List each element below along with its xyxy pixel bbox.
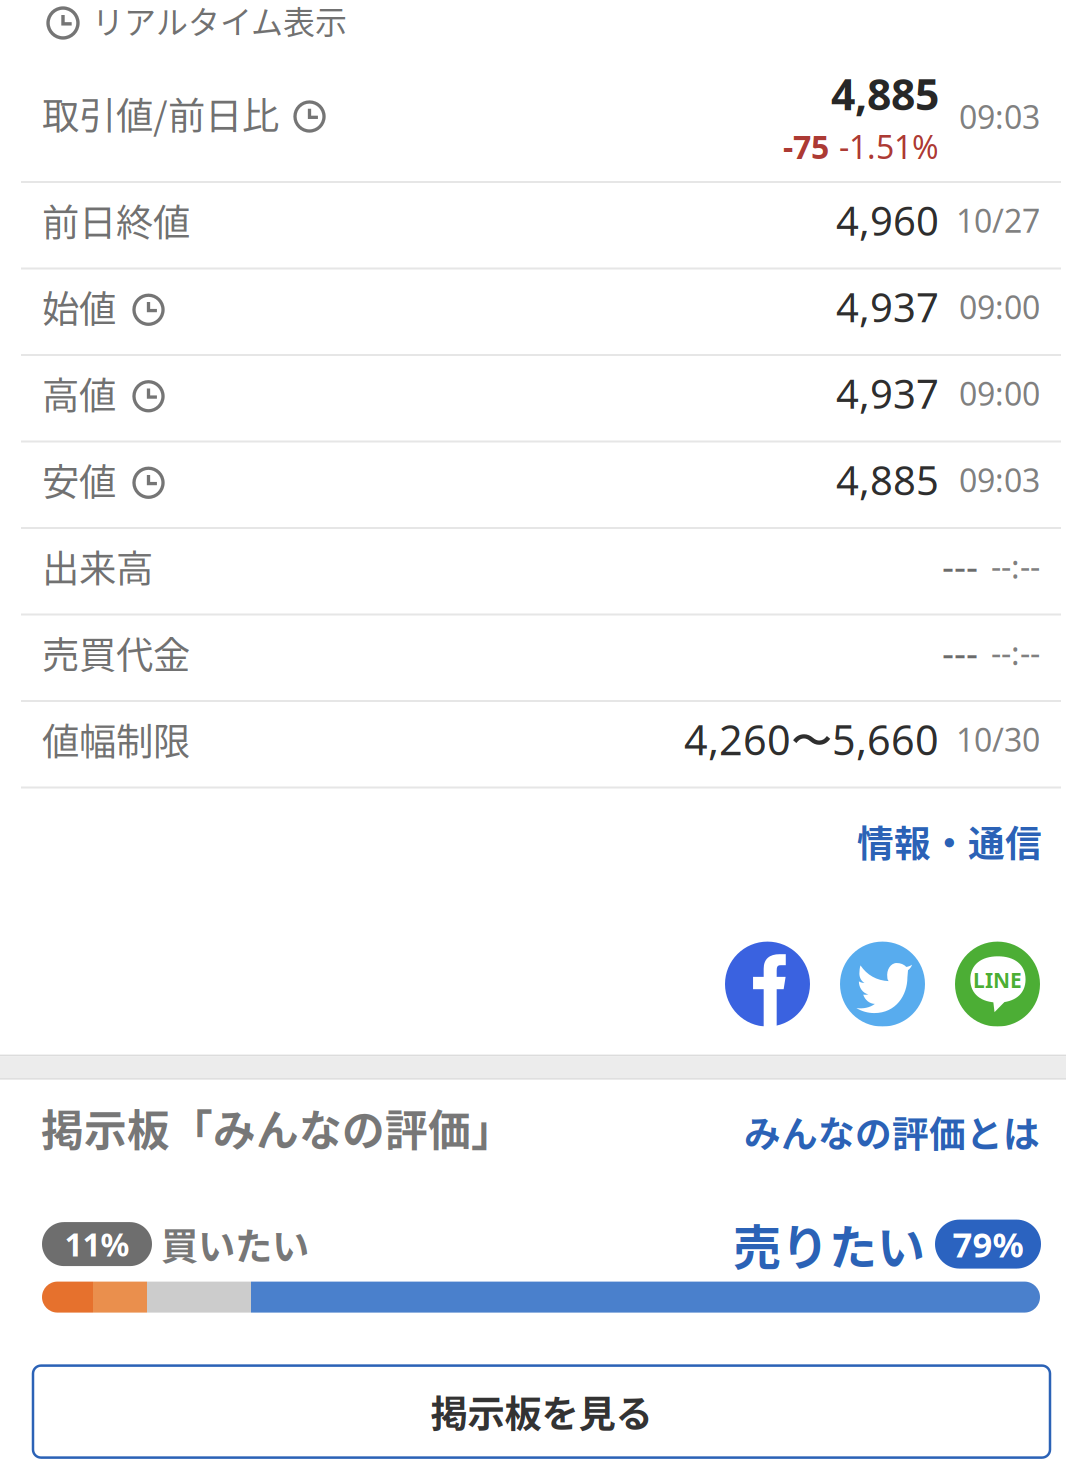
staticText: 10/30 [956,717,1040,761]
staticText: --:-- [991,544,1040,588]
staticText: 4,885 [836,452,939,507]
staticText: -1.51% [839,125,939,168]
staticText: --- [942,627,978,678]
staticText: 4,960 [836,193,939,247]
staticText: 取引値/前日比 [42,86,279,141]
staticText: 安値 [42,453,116,507]
staticText: -75 [783,125,829,168]
staticText: 売買代金 [42,626,190,680]
staticText: 売りたい [733,1209,925,1279]
staticText: 情報・通信 [857,814,1042,868]
staticText: 4,885 [831,65,939,123]
staticText: 09:00 [959,371,1040,415]
staticText: 11% [64,1222,129,1266]
staticText: 09:03 [959,95,1040,138]
staticText: 4,937 [836,366,939,420]
staticText: --:-- [991,631,1040,675]
staticText: みんなの評価とは [744,1105,1040,1158]
button[interactable]: Share on Twitter [840,942,925,1027]
staticText: 値幅制限 [42,712,190,766]
button[interactable]: 掲示板を見る [33,1366,1050,1458]
staticText: 買いたい [161,1217,309,1271]
staticText: 09:00 [959,285,1040,329]
button[interactable]: Share on LINE [955,942,1040,1027]
button[interactable]: Share on Facebook [725,942,810,1027]
staticText: --- [942,541,978,592]
staticText: 掲示板を見る [430,1385,652,1439]
staticText: 79% [952,1220,1023,1268]
staticText: LINE [973,966,1022,994]
staticText: リアルタイム表示 [92,0,347,43]
staticText: 出来高 [42,539,153,593]
staticText: 始値 [42,280,116,334]
staticText: 09:03 [959,458,1040,502]
staticText: 前日終値 [42,193,190,247]
staticText: 高値 [42,366,116,420]
button[interactable]: みんなの評価とは [744,1097,1040,1158]
staticText: 4,260〜5,660 [684,711,939,767]
button[interactable]: 情報・通信 [857,809,1042,873]
staticText: 4,937 [836,279,939,334]
staticText: 10/27 [956,198,1040,242]
staticText: 掲示板「みんなの評価」 [41,1097,514,1158]
